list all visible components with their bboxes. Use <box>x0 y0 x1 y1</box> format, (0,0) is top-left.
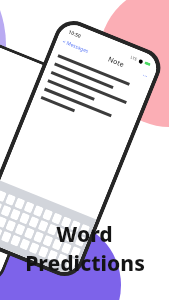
staticText: LTE <box>48 77 57 84</box>
staticText: Predictions <box>25 249 145 278</box>
staticText: Note <box>106 55 126 70</box>
staticText: 10:50 <box>67 29 82 40</box>
staticText: < Messages <box>61 38 90 55</box>
staticText: ... <box>142 70 150 79</box>
staticText: LTE <box>130 55 138 62</box>
staticText: Word <box>56 220 113 249</box>
